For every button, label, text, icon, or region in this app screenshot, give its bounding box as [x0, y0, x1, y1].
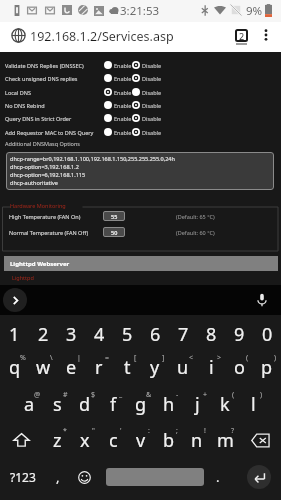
- button[interactable]: n: [183, 425, 211, 455]
- button[interactable]: p: [253, 352, 281, 382]
- button[interactable]: i: [197, 352, 225, 382]
- staticText: 3: [66, 322, 77, 347]
- button[interactable]: Enable: [104, 72, 132, 84]
- button[interactable]: a: [15, 389, 43, 419]
- button[interactable]: l: [239, 389, 267, 419]
- staticText: n: [191, 428, 203, 453]
- staticText: q: [9, 355, 21, 380]
- staticText: ': [120, 426, 122, 436]
- button[interactable]: Enable: [104, 86, 132, 98]
- button[interactable]: Local DNS: [0, 86, 281, 98]
- button[interactable]: f: [99, 389, 127, 419]
- button[interactable]: Emoji: [70, 462, 99, 492]
- staticText: Disable: [142, 115, 162, 122]
- button[interactable]: More options: [253, 22, 279, 48]
- button[interactable]: .: [206, 462, 230, 492]
- staticText: @: [34, 390, 41, 400]
- button[interactable]: Enable: [104, 112, 132, 124]
- staticText: y: [150, 355, 160, 380]
- button[interactable]: Voice input: [250, 288, 274, 312]
- button[interactable]: t: [113, 352, 141, 382]
- button[interactable]: m: [211, 425, 239, 455]
- button[interactable]: 50: [103, 227, 125, 237]
- button[interactable]: Disable: [132, 59, 162, 71]
- staticText: 0: [262, 322, 273, 347]
- button[interactable]: Tabs: [228, 22, 254, 48]
- button[interactable]: c: [99, 425, 127, 455]
- button[interactable]: 5: [113, 319, 141, 349]
- button[interactable]: Disable: [132, 99, 162, 111]
- button[interactable]: 1: [0, 319, 29, 349]
- staticText: b: [163, 428, 175, 453]
- button[interactable]: q: [0, 352, 29, 382]
- button[interactable]: ?123: [0, 462, 45, 492]
- staticText: -: [176, 390, 179, 400]
- staticText: v: [136, 428, 146, 453]
- button[interactable]: Query DNS in Strict Order: [0, 112, 281, 124]
- button[interactable]: v: [127, 425, 155, 455]
- staticText: ": [92, 426, 95, 436]
- staticText: c: [109, 428, 118, 453]
- button[interactable]: ,: [45, 462, 70, 492]
- button[interactable]: b: [155, 425, 183, 455]
- staticText: Query DNS in Strict Order: [5, 115, 72, 122]
- button[interactable]: o: [225, 352, 253, 382]
- button[interactable]: Enable: [104, 59, 132, 71]
- button[interactable]: y: [141, 352, 169, 382]
- button[interactable]: More suggestions: [3, 288, 27, 312]
- staticText: i: [209, 355, 214, 380]
- button[interactable]: Shift: [0, 425, 43, 455]
- button[interactable]: Add Requestor MAC to DNS Query: [0, 126, 281, 138]
- staticText: *: [63, 426, 67, 436]
- button[interactable]: 7: [169, 319, 197, 349]
- button[interactable]: 0: [253, 319, 281, 349]
- button[interactable]: w: [29, 352, 57, 382]
- button[interactable]: Check unsigned DNS replies: [0, 72, 281, 84]
- staticText: h: [163, 392, 175, 417]
- button[interactable]: s: [43, 389, 71, 419]
- staticText: s: [53, 392, 62, 417]
- button[interactable]: z: [43, 425, 71, 455]
- staticText: k: [220, 392, 230, 417]
- button[interactable]: x: [71, 425, 99, 455]
- staticText: u: [177, 355, 189, 380]
- button[interactable]: 8: [197, 319, 225, 349]
- button[interactable]: Disable: [132, 86, 162, 98]
- staticText: (: [246, 353, 249, 363]
- button[interactable]: 55: [103, 211, 125, 221]
- button[interactable]: 6: [141, 319, 169, 349]
- button[interactable]: 4: [85, 319, 113, 349]
- button[interactable]: Space: [106, 468, 204, 486]
- button[interactable]: d: [71, 389, 99, 419]
- button[interactable]: 2: [29, 319, 57, 349]
- staticText: _: [119, 390, 123, 400]
- staticText: Enable: [114, 89, 132, 96]
- staticText: ,: [56, 468, 60, 486]
- button[interactable]: 9: [225, 319, 253, 349]
- staticText: ;: [176, 426, 178, 436]
- button[interactable]: 3: [57, 319, 85, 349]
- button[interactable]: Disable: [132, 112, 162, 124]
- button[interactable]: Enable: [104, 126, 132, 138]
- button[interactable]: r: [85, 352, 113, 382]
- button[interactable]: Enter: [247, 465, 271, 489]
- button[interactable]: h: [155, 389, 183, 419]
- staticText: .: [216, 468, 220, 486]
- button[interactable]: Validate DNS Replies (DNSSEC): [0, 59, 281, 71]
- button[interactable]: Disable: [132, 126, 162, 138]
- button[interactable]: dhcp-range=br0,192.168.1.100,192.168.1.1…: [6, 152, 274, 190]
- button[interactable]: e: [57, 352, 85, 382]
- button[interactable]: Enable: [104, 99, 132, 111]
- button[interactable]: k: [211, 389, 239, 419]
- button[interactable]: u: [169, 352, 197, 382]
- staticText: dhcp-range=br0,192.168.1.100,192.168.1.1…: [10, 155, 175, 162]
- button[interactable]: j: [183, 389, 211, 419]
- button[interactable]: g: [127, 389, 155, 419]
- button[interactable]: No DNS Rebind: [0, 99, 281, 111]
- button[interactable]: Lighttpd Webserver: [4, 256, 278, 271]
- staticText: No DNS Rebind: [5, 102, 45, 109]
- staticText: dhcp-option=3,192.168.1.2: [10, 163, 79, 170]
- button[interactable]: Disable: [132, 72, 162, 84]
- button[interactable]: Backspace: [239, 425, 281, 455]
- staticText: #: [63, 390, 68, 400]
